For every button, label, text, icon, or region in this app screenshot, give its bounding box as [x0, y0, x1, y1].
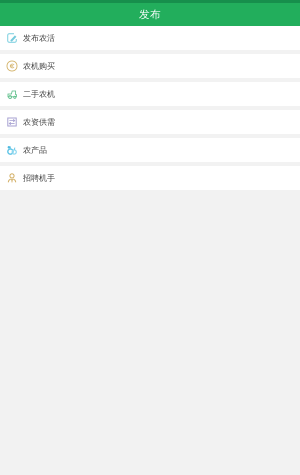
staticText: 农产品 [23, 145, 47, 155]
button[interactable]: 农资供需 [0, 110, 300, 134]
button[interactable]: 发布农活 [0, 26, 300, 50]
button[interactable]: 农机购买 [0, 54, 300, 78]
button[interactable]: 二手农机 [0, 82, 300, 106]
staticText: 发布 [139, 8, 161, 21]
staticText: 二手农机 [23, 89, 55, 99]
staticText: 发布农活 [23, 33, 55, 43]
staticText: 农机购买 [23, 61, 55, 71]
staticText: 农资供需 [23, 117, 55, 127]
button[interactable]: 招聘机手 [0, 166, 300, 190]
staticText: 招聘机手 [23, 173, 55, 183]
button[interactable]: 农产品 [0, 138, 300, 162]
